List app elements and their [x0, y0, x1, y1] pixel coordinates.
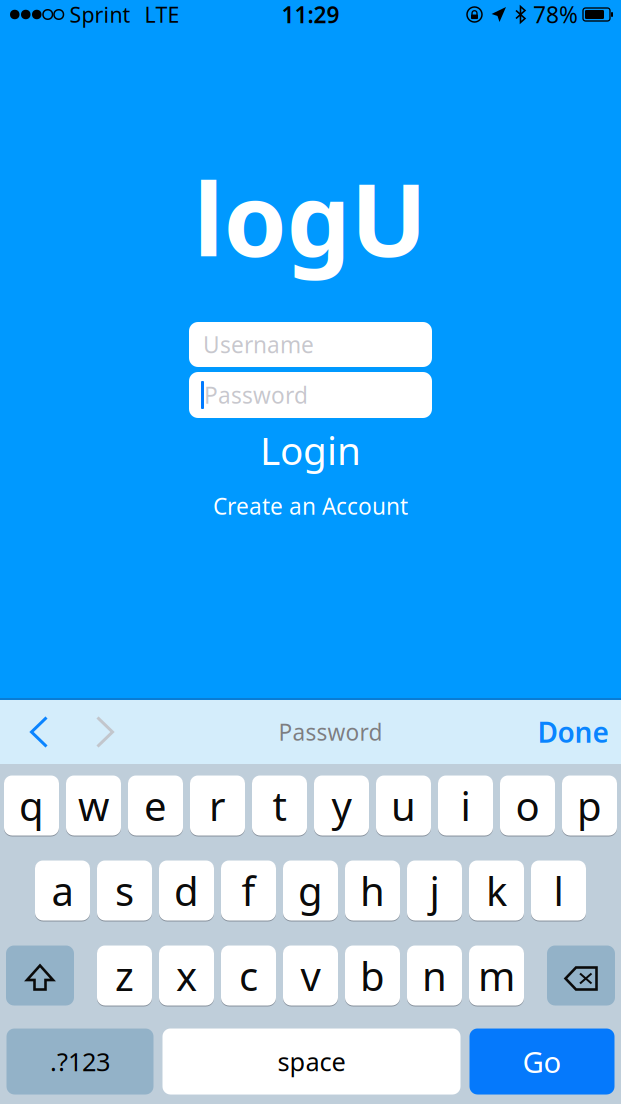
button[interactable]: Username: [189, 322, 432, 367]
button[interactable]: w: [66, 775, 121, 835]
staticText: .?123: [50, 1045, 110, 1078]
button[interactable]: a: [35, 860, 90, 920]
staticText: logU: [193, 150, 427, 285]
button[interactable]: space: [162, 1028, 460, 1094]
button[interactable]: e: [128, 775, 183, 835]
staticText: p: [577, 779, 602, 832]
staticText: n: [422, 949, 447, 1002]
button[interactable]: r: [190, 775, 245, 835]
staticText: u: [391, 779, 416, 832]
button[interactable]: p: [562, 775, 617, 835]
button[interactable]: Login: [200, 427, 420, 473]
staticText: t: [272, 779, 286, 832]
button[interactable]: k: [469, 860, 524, 920]
staticText: d: [174, 864, 199, 917]
staticText: Sprint: [69, 0, 130, 29]
button[interactable]: n: [407, 945, 462, 1005]
button[interactable]: b: [345, 945, 400, 1005]
button[interactable]: g: [283, 860, 338, 920]
staticText: y: [331, 779, 351, 832]
staticText: g: [298, 864, 323, 917]
button[interactable]: d: [159, 860, 214, 920]
staticText: v: [300, 949, 320, 1002]
staticText: Username: [203, 329, 314, 359]
button[interactable]: t: [252, 775, 307, 835]
staticText: h: [360, 864, 385, 917]
staticText: x: [176, 949, 197, 1002]
staticText: i: [460, 779, 470, 832]
button[interactable]: Go: [469, 1028, 614, 1094]
staticText: o: [515, 779, 539, 832]
button[interactable]: o: [500, 775, 555, 835]
staticText: LTE: [144, 0, 179, 29]
staticText: z: [115, 949, 134, 1002]
button[interactable]: q: [4, 775, 59, 835]
staticText: r: [209, 779, 226, 832]
button[interactable]: Delete: [547, 945, 615, 1005]
staticText: Go: [522, 1042, 561, 1081]
staticText: q: [19, 779, 44, 832]
staticText: Create an Account: [213, 491, 408, 521]
staticText: l: [553, 864, 563, 917]
button[interactable]: i: [438, 775, 493, 835]
button[interactable]: Previous field: [0, 700, 66, 764]
button[interactable]: Password: [189, 372, 432, 418]
button[interactable]: c: [221, 945, 276, 1005]
staticText: 11:29: [281, 0, 339, 29]
button[interactable]: s: [97, 860, 152, 920]
button[interactable]: z: [97, 945, 152, 1005]
button[interactable]: m: [469, 945, 524, 1005]
staticText: e: [144, 779, 167, 832]
button[interactable]: Shift: [6, 945, 74, 1005]
staticText: Done: [537, 713, 608, 751]
staticText: k: [486, 864, 507, 917]
button[interactable]: l: [531, 860, 586, 920]
button[interactable]: .?123: [6, 1028, 153, 1094]
staticText: Login: [260, 424, 361, 476]
staticText: s: [115, 864, 134, 917]
staticText: Password: [204, 380, 308, 410]
button[interactable]: Done: [525, 700, 621, 764]
staticText: 78%: [533, 0, 578, 29]
staticText: j: [429, 864, 439, 917]
staticText: Password: [278, 717, 382, 747]
button[interactable]: v: [283, 945, 338, 1005]
staticText: a: [51, 864, 73, 917]
staticText: w: [78, 779, 109, 832]
staticText: space: [277, 1045, 345, 1078]
button[interactable]: h: [345, 860, 400, 920]
button[interactable]: Create an Account: [140, 490, 480, 522]
button[interactable]: x: [159, 945, 214, 1005]
staticText: b: [360, 949, 385, 1002]
staticText: f: [241, 864, 255, 917]
button[interactable]: u: [376, 775, 431, 835]
staticText: m: [478, 949, 515, 1002]
button[interactable]: j: [407, 860, 462, 920]
button[interactable]: y: [314, 775, 369, 835]
button[interactable]: f: [221, 860, 276, 920]
staticText: c: [239, 949, 258, 1002]
button[interactable]: Next field: [66, 700, 132, 764]
